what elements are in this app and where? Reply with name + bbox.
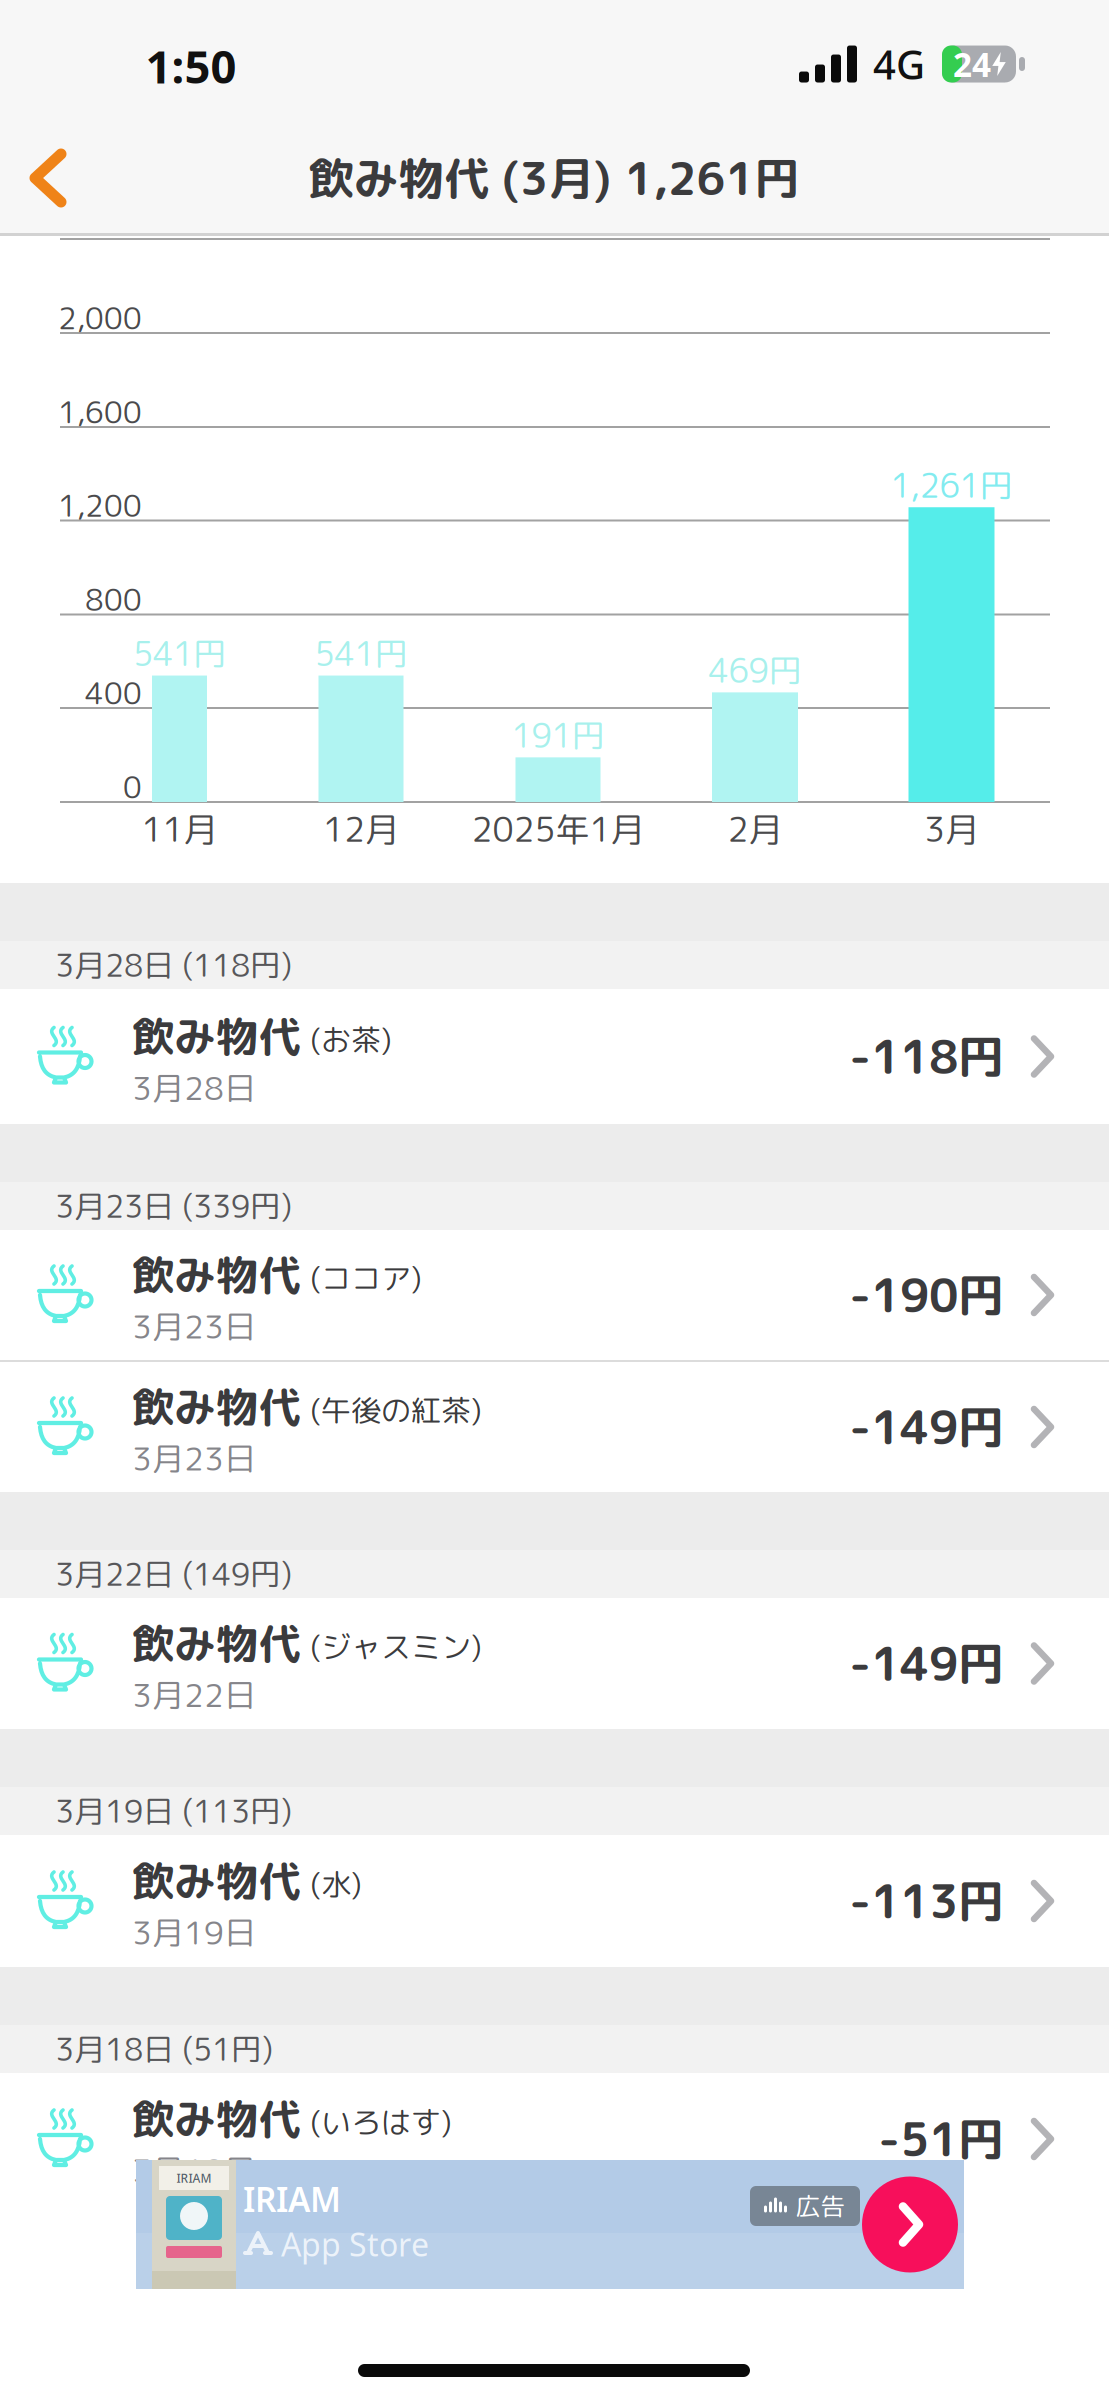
staticText: -190円 bbox=[849, 1263, 1004, 1327]
staticText: 飲み物代 bbox=[132, 2089, 300, 2148]
staticText: -149円 bbox=[849, 1395, 1004, 1459]
staticText: -51円 bbox=[878, 2107, 1004, 2171]
staticText: -149円 bbox=[849, 1631, 1004, 1696]
staticText: 541円 bbox=[133, 630, 226, 676]
staticText: 3月28日 (118円) bbox=[55, 943, 292, 987]
button[interactable]: 飲み物代 bbox=[0, 1835, 1109, 1967]
button[interactable]: Back bbox=[24, 144, 72, 212]
staticText: 飲み物代 bbox=[132, 1377, 300, 1436]
button[interactable]: 飲み物代 bbox=[0, 1362, 1109, 1492]
staticText: 12月 bbox=[323, 805, 399, 853]
staticText: 0 bbox=[123, 766, 142, 808]
staticText: 広告 bbox=[795, 2189, 845, 2223]
staticText: 1:50 bbox=[145, 36, 236, 96]
staticText: 2025年1月 bbox=[471, 805, 644, 853]
staticText: IRIAM bbox=[243, 2177, 341, 2221]
staticText: (お茶) bbox=[310, 1019, 392, 1060]
staticText: -113円 bbox=[849, 1869, 1004, 1933]
button[interactable]: 飲み物代 bbox=[0, 1598, 1109, 1729]
staticText: 飲み物代 bbox=[132, 1851, 300, 1910]
staticText: 3月19日 bbox=[132, 1910, 256, 1955]
staticText: 541円 bbox=[314, 630, 407, 676]
staticText: 3月23日 (339円) bbox=[55, 1184, 292, 1228]
button[interactable]: 飲み物代 bbox=[0, 1230, 1109, 1360]
staticText: 飲み物代 bbox=[132, 1007, 300, 1065]
staticText: 3月23日 bbox=[132, 1304, 256, 1349]
staticText: (水) bbox=[310, 1863, 362, 1905]
staticText: (いろはす) bbox=[310, 2101, 452, 2143]
staticText: 3月22日 bbox=[132, 1672, 256, 1717]
staticText: -118円 bbox=[849, 1024, 1004, 1089]
staticText: 3月28日 bbox=[132, 1065, 256, 1110]
staticText: 400 bbox=[85, 672, 142, 714]
staticText: (午後の紅茶) bbox=[310, 1389, 482, 1431]
staticText: (ジャスミン) bbox=[310, 1626, 482, 1667]
staticText: 469円 bbox=[708, 647, 801, 693]
staticText: 800 bbox=[85, 579, 142, 620]
staticText: 3月19日 (113円) bbox=[55, 1789, 292, 1833]
staticText: 3月23日 bbox=[132, 1436, 256, 1481]
staticText: 191円 bbox=[511, 712, 604, 758]
staticText: 11月 bbox=[141, 805, 217, 853]
staticText: 飲み物代 bbox=[132, 1614, 300, 1672]
staticText: 2,000 bbox=[58, 297, 142, 339]
staticText: (ココア) bbox=[310, 1257, 422, 1299]
staticText: 24 bbox=[953, 42, 991, 86]
staticText: 3月18日 bbox=[132, 2148, 256, 2193]
staticText: 3月 bbox=[924, 805, 979, 853]
staticText: 1,261円 bbox=[890, 462, 1012, 508]
staticText: App Store bbox=[281, 2223, 429, 2265]
staticText: 2月 bbox=[727, 805, 782, 853]
staticText: 3月18日 (51円) bbox=[55, 2027, 273, 2071]
staticText: 1,600 bbox=[58, 391, 142, 433]
button[interactable]: Advertisement: IRIAM on App Store bbox=[136, 2160, 964, 2289]
staticText: 4G bbox=[873, 37, 925, 90]
staticText: 1,200 bbox=[58, 485, 142, 526]
staticText: 飲み物代 bbox=[132, 1245, 300, 1304]
button[interactable]: 飲み物代 bbox=[0, 2073, 1109, 2205]
staticText: 飲み物代 (3月) 1,261円 bbox=[308, 147, 799, 209]
staticText: 3月22日 (149円) bbox=[55, 1552, 292, 1596]
staticText: IRIAM bbox=[176, 2170, 211, 2186]
button[interactable]: 飲み物代 bbox=[0, 989, 1109, 1124]
